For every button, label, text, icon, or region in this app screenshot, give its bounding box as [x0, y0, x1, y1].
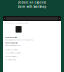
button[interactable]: Export a summary — [5, 55, 59, 58]
button[interactable]: Archive the claim — [5, 58, 59, 62]
staticText: claim with ScanSnap — [17, 5, 46, 8]
button[interactable]: Track reimbursement — [5, 51, 59, 55]
staticText: Declare an expense — [17, 1, 46, 4]
staticText: Turn paper receipts into filed claims — [5, 22, 29, 24]
staticText: Archive the claim — [5, 59, 16, 61]
staticText: Edit anything that looks off — [5, 45, 21, 46]
staticText: Track reimbursement — [5, 52, 21, 54]
staticText: Export a summary — [5, 56, 18, 57]
staticText: Amount, date and vendor are read for you — [5, 39, 34, 41]
staticText: Check the details — [5, 42, 18, 44]
staticText: Scan the receipt — [5, 37, 18, 38]
staticText: Send to accounting — [5, 49, 18, 51]
button[interactable]: Send to accounting — [5, 48, 59, 51]
